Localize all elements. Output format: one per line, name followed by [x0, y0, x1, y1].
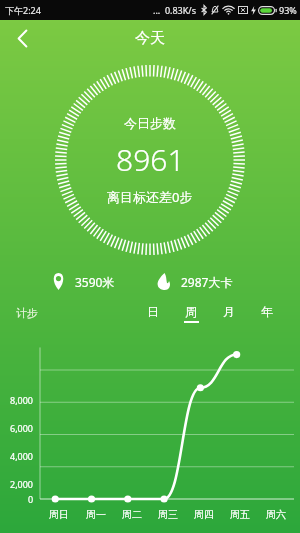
button[interactable]: 月 [215, 304, 243, 323]
staticText: 8961 [116, 139, 185, 180]
other: 距离 [52, 273, 65, 290]
button[interactable]: 距离 [52, 273, 115, 290]
other: 卡路里 [157, 273, 171, 290]
staticText: 6,000 [10, 422, 34, 434]
staticText: ... 0.83K/s [153, 4, 197, 16]
staticText: 下午2:24 [5, 4, 41, 16]
staticText: 2987大卡 [181, 274, 233, 290]
staticText: 月 [223, 304, 235, 319]
staticText: 周 [185, 304, 197, 319]
button[interactable]: 卡路里 [157, 273, 233, 290]
staticText: 周一 [86, 508, 106, 521]
staticText: 周五 [230, 508, 250, 521]
staticText: 周三 [158, 508, 178, 521]
button[interactable]: 年 [253, 304, 281, 323]
staticText: 离目标还差0步 [107, 188, 193, 206]
staticText: 周六 [266, 508, 286, 521]
staticText: 3590米 [75, 274, 115, 290]
staticText: 2,000 [10, 478, 34, 490]
staticText: 周四 [194, 508, 214, 521]
staticText: 年 [261, 304, 273, 319]
button[interactable]: 周 [177, 304, 205, 323]
staticText: 周二 [122, 508, 142, 521]
staticText: 日 [147, 304, 159, 319]
staticText: 93% [279, 4, 297, 16]
button[interactable]: 日 [139, 304, 167, 323]
staticText: 8,000 [10, 394, 34, 406]
staticText: 计步 [16, 306, 38, 320]
staticText: 0 [28, 493, 34, 505]
button[interactable]: 返回 [4, 20, 40, 56]
staticText: 周日 [49, 508, 69, 521]
staticText: 今天 [135, 29, 165, 48]
staticText: 今日步数 [124, 115, 176, 131]
staticText: 4,000 [10, 450, 34, 462]
